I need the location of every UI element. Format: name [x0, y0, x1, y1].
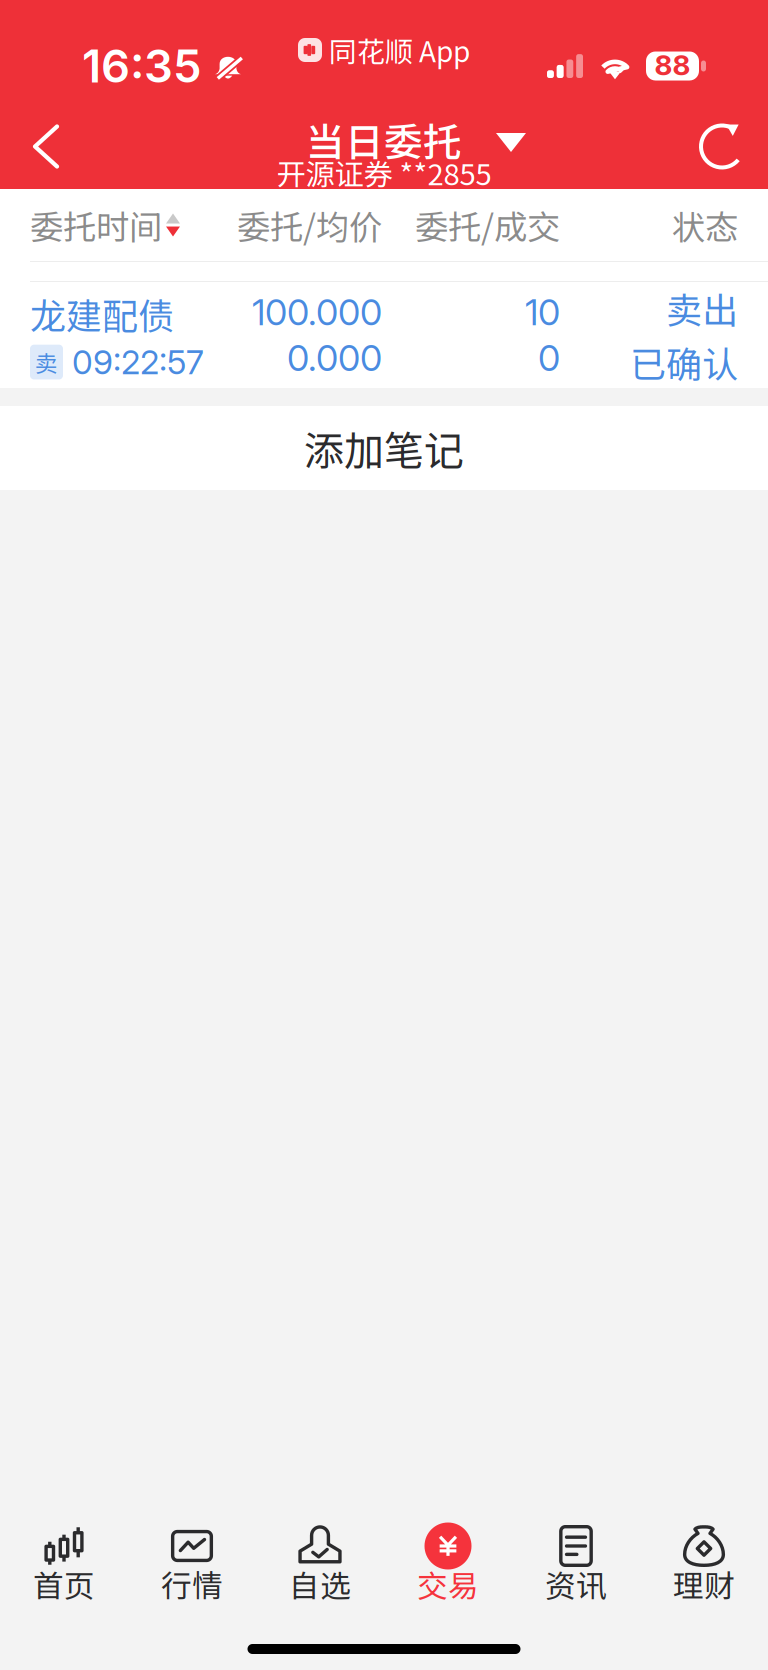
button[interactable]: 自选 [256, 1524, 384, 1600]
button[interactable]: Switch account [479, 110, 543, 174]
staticText: 状态 [672, 201, 738, 249]
staticText: 100.000 [252, 290, 382, 334]
staticText: 理财 [673, 1562, 735, 1606]
staticText: 10 [525, 290, 560, 334]
staticText: 16:35 [82, 39, 202, 93]
button[interactable]: 委托时间 [30, 189, 220, 261]
button[interactable]: 资讯 [512, 1524, 640, 1600]
button[interactable]: 交易 [384, 1524, 512, 1600]
button[interactable]: 添加笔记 [0, 406, 768, 490]
staticText: 行情 [161, 1562, 223, 1606]
staticText: 交易 [417, 1562, 479, 1606]
button[interactable]: 首页 [0, 1524, 128, 1600]
staticText: 资讯 [545, 1562, 607, 1606]
staticText: 卖 [35, 346, 58, 378]
staticText: 首页 [33, 1562, 95, 1606]
button[interactable]: 龙建配债 [0, 282, 768, 388]
staticText: 0 [538, 336, 560, 380]
button[interactable]: 当日委托 [234, 120, 534, 186]
staticText: 当日委托 [306, 111, 462, 167]
staticText: 委托/成交 [415, 201, 560, 249]
staticText: 委托时间 [30, 201, 162, 249]
staticText: 卖出 [666, 282, 738, 334]
staticText: 开源证券 **2855 [276, 151, 491, 194]
staticText: 88 [654, 48, 690, 82]
staticText: 同花顺 App [329, 30, 470, 70]
staticText: 自选 [289, 1562, 351, 1606]
button[interactable]: 理财 [640, 1524, 768, 1600]
staticText: 已确认 [630, 336, 738, 388]
button[interactable]: 行情 [128, 1524, 256, 1600]
staticText: 龙建配债 [30, 288, 174, 340]
button[interactable]: Refresh [676, 104, 768, 189]
staticText: 委托/均价 [237, 201, 382, 249]
staticText: 添加笔记 [304, 419, 464, 477]
staticText: 0.000 [287, 336, 382, 380]
button[interactable]: Back [0, 104, 92, 189]
staticText: 09:22:57 [72, 342, 204, 382]
